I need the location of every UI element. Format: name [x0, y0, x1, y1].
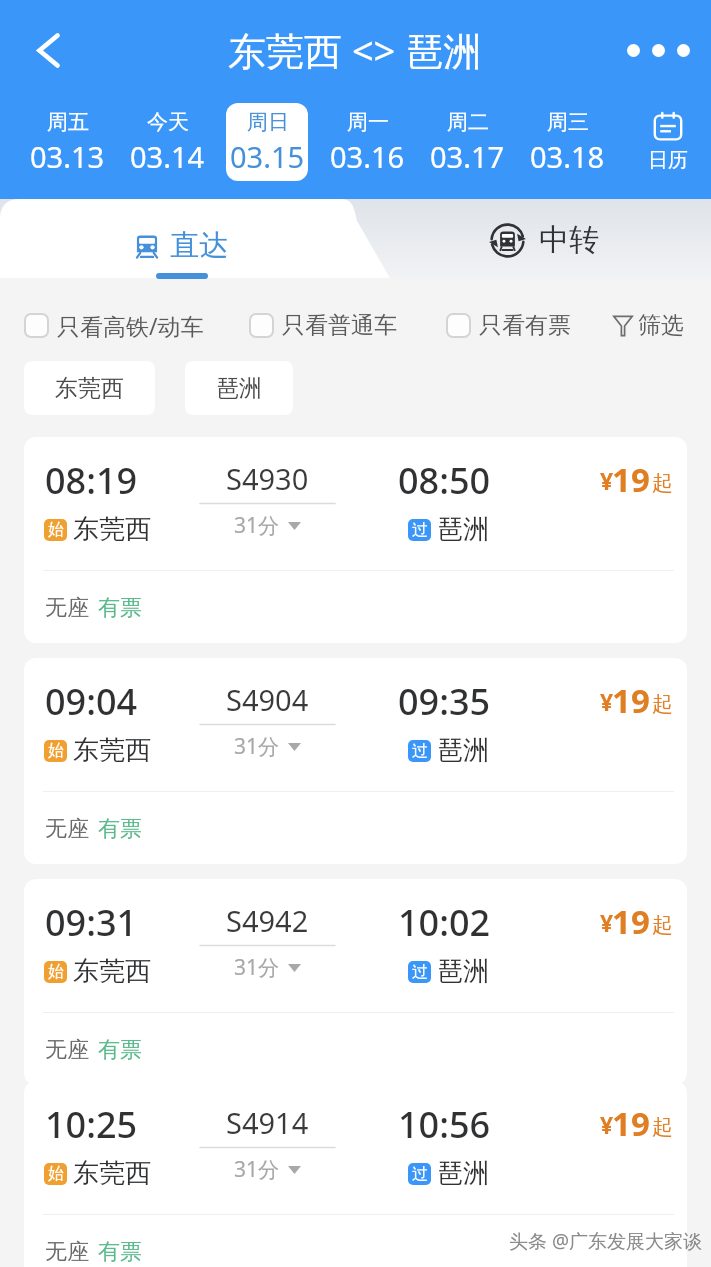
button[interactable]: 周二	[426, 103, 508, 181]
staticText: 东莞西	[73, 734, 151, 767]
staticText: 始	[48, 1164, 64, 1184]
staticText: 过	[412, 962, 428, 982]
staticText: 筛选	[638, 311, 684, 340]
staticText: 无座	[45, 1238, 89, 1266]
button[interactable]: 只看有票	[447, 311, 571, 340]
staticText: 无座	[45, 1036, 89, 1064]
staticText: 琶洲	[437, 1157, 489, 1190]
staticText: 08:19	[45, 456, 138, 505]
button[interactable]: 09:04	[24, 658, 687, 864]
staticText: 31分	[234, 732, 280, 761]
button[interactable]: 周一	[326, 103, 408, 181]
staticText: 直达	[170, 227, 228, 264]
staticText: 起	[652, 691, 673, 717]
button[interactable]: 周五	[26, 103, 108, 181]
staticText: 东莞西 <> 琶洲	[228, 24, 482, 76]
button[interactable]: 只看高铁/动车	[25, 310, 204, 341]
button[interactable]: 只看普通车	[250, 311, 397, 340]
staticText: ¥	[600, 1109, 614, 1140]
button[interactable]: Back	[18, 20, 78, 80]
staticText: 只看有票	[479, 311, 571, 340]
button[interactable]: 直达	[0, 199, 362, 278]
button[interactable]: 中转	[371, 199, 711, 278]
staticText: 10:56	[398, 1100, 491, 1149]
staticText: 中转	[539, 221, 599, 259]
staticText: 03.15	[230, 137, 305, 176]
staticText: 31分	[234, 953, 280, 982]
button[interactable]: 周三	[526, 103, 608, 181]
button[interactable]: 东莞西	[24, 361, 155, 415]
staticText: 有票	[98, 1238, 142, 1266]
staticText: ¥	[600, 686, 614, 717]
staticText: 03.13	[30, 137, 105, 176]
button[interactable]: More options	[615, 23, 701, 77]
staticText: 10:25	[45, 1100, 138, 1149]
staticText: 头条 @广东发展大家谈	[509, 1228, 703, 1254]
staticText: 琶洲	[437, 955, 489, 988]
staticText: 起	[652, 470, 673, 496]
staticText: 09:04	[45, 677, 138, 726]
staticText: 琶洲	[216, 374, 262, 403]
staticText: S4904	[226, 680, 309, 719]
staticText: 19	[612, 1101, 650, 1146]
staticText: S4914	[226, 1103, 309, 1142]
button[interactable]: 今天	[126, 103, 208, 181]
button[interactable]: 筛选	[613, 311, 684, 340]
staticText: 周五	[47, 109, 89, 135]
staticText: 03.18	[530, 137, 605, 176]
staticText: 19	[612, 678, 650, 723]
staticText: 19	[612, 899, 650, 944]
staticText: 过	[412, 520, 428, 540]
staticText: 琶洲	[437, 513, 489, 546]
staticText: 起	[652, 912, 673, 938]
staticText: 东莞西	[73, 1157, 151, 1190]
staticText: 过	[412, 1164, 428, 1184]
staticText: 有票	[98, 1036, 142, 1064]
staticText: 起	[652, 1114, 673, 1140]
staticText: 周一	[347, 109, 389, 135]
staticText: 东莞西	[55, 374, 124, 403]
staticText: 10:02	[398, 898, 491, 947]
staticText: 有票	[98, 815, 142, 843]
button[interactable]: 10:25	[24, 1081, 687, 1267]
staticText: ¥	[600, 465, 614, 496]
staticText: 今天	[147, 109, 189, 135]
staticText: 只看高铁/动车	[57, 310, 204, 341]
staticText: 31分	[234, 511, 280, 540]
staticText: ¥	[600, 907, 614, 938]
staticText: 无座	[45, 594, 89, 622]
staticText: S4930	[226, 459, 309, 498]
button[interactable]: 琶洲	[185, 361, 293, 415]
staticText: 03.16	[330, 137, 405, 176]
staticText: 始	[48, 520, 64, 540]
staticText: 日历	[648, 148, 688, 173]
staticText: 只看普通车	[282, 311, 397, 340]
staticText: 周日	[247, 109, 289, 135]
staticText: 始	[48, 962, 64, 982]
staticText: 09:31	[45, 898, 138, 947]
staticText: 03.14	[130, 137, 205, 176]
staticText: 19	[612, 457, 650, 502]
staticText: 过	[412, 741, 428, 761]
staticText: 31分	[234, 1155, 280, 1184]
staticText: 无座	[45, 815, 89, 843]
staticText: S4942	[226, 901, 309, 940]
staticText: 09:35	[398, 677, 491, 726]
button[interactable]: 08:19	[24, 437, 687, 643]
button[interactable]: 09:31	[24, 879, 687, 1085]
staticText: 03.17	[430, 137, 505, 176]
staticText: 东莞西	[73, 955, 151, 988]
staticText: 始	[48, 741, 64, 761]
staticText: 周三	[547, 109, 589, 135]
staticText: 有票	[98, 594, 142, 622]
button[interactable]: 周日	[226, 103, 308, 181]
staticText: 东莞西	[73, 513, 151, 546]
staticText: 08:50	[398, 456, 491, 505]
staticText: 周二	[447, 109, 489, 135]
button[interactable]: Calendar	[628, 100, 708, 184]
staticText: 琶洲	[437, 734, 489, 767]
